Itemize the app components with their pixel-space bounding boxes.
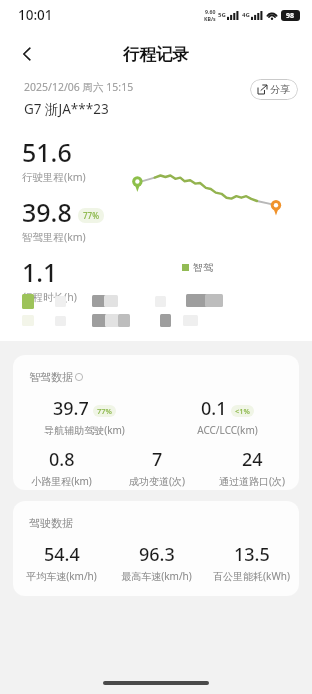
staticText: 智驾 — [193, 261, 213, 274]
staticText: 0.1 — [201, 396, 227, 421]
staticText: 成功变道(次) — [129, 474, 185, 488]
button[interactable]: Back — [8, 35, 46, 73]
staticText: 智驾数据 — [29, 370, 73, 384]
button[interactable]: 智驾数据 — [13, 355, 299, 490]
staticText: ACC/LCC(km) — [197, 423, 258, 437]
staticText: 驾驶数据 — [29, 516, 73, 530]
staticText: 77% — [97, 406, 112, 416]
staticText: 1.1 — [22, 255, 58, 289]
staticText: 10:01 — [18, 6, 53, 24]
staticText: 平均车速(km/h) — [26, 569, 97, 583]
staticText: 9.60 — [205, 8, 216, 15]
staticText: 24 — [242, 447, 263, 472]
staticText: 行驶里程(km) — [22, 170, 86, 184]
staticText: 54.4 — [44, 542, 80, 567]
staticText: 13.5 — [234, 542, 270, 567]
staticText: 5G — [218, 11, 226, 19]
staticText: 39.7 — [53, 396, 89, 421]
button[interactable]: 分享 — [250, 79, 298, 100]
staticText: <1% — [235, 406, 250, 416]
staticText: 2025/12/06 周六 15:15 — [24, 80, 134, 94]
staticText: 77% — [83, 210, 99, 221]
staticText: 行程时长(h) — [22, 290, 77, 304]
staticText: 39.8 — [22, 195, 72, 229]
staticText: 百公里能耗(kWh) — [213, 569, 290, 583]
staticText: 98 — [286, 11, 295, 21]
staticText: 行程记录 — [123, 44, 189, 65]
staticText: 导航辅助驾驶(km) — [44, 423, 125, 437]
staticText: 小路里程(km) — [31, 474, 92, 488]
button[interactable]: 驾驶数据 — [13, 501, 299, 596]
staticText: 通过道路口(次) — [219, 474, 285, 488]
staticText: 智驾里程(km) — [22, 230, 86, 244]
staticText: G7 浙JA***23 — [24, 100, 109, 118]
staticText: 4G — [242, 11, 250, 19]
staticText: 最高车速(km/h) — [121, 569, 192, 583]
staticText: 7 — [152, 447, 163, 472]
staticText: 分享 — [270, 83, 290, 96]
staticText: 51.6 — [22, 135, 72, 169]
staticText: KB/s — [204, 15, 216, 22]
staticText: 0.8 — [49, 447, 75, 472]
staticText: 96.3 — [139, 542, 175, 567]
